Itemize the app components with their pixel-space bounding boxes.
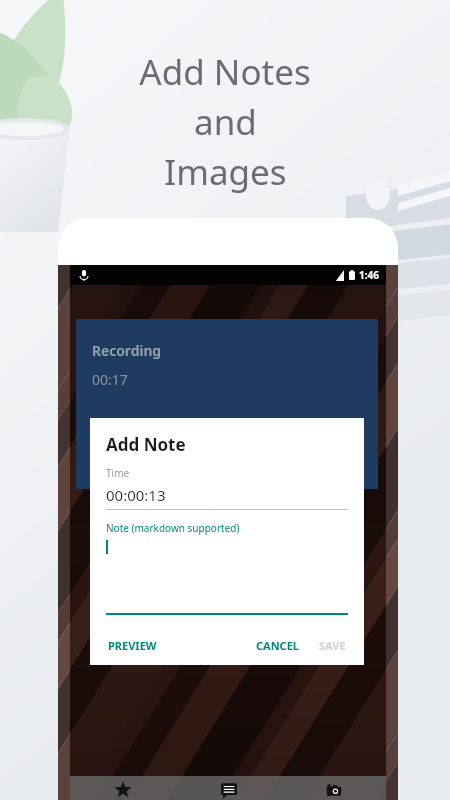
staticText: Note (markdown supported) [106, 521, 240, 535]
staticText: CANCEL [256, 638, 299, 653]
button[interactable]: SAVE [317, 636, 348, 655]
other: Add Note [220, 781, 238, 799]
staticText: 1:46 [359, 268, 379, 282]
staticText: Add Note [106, 433, 186, 456]
button[interactable]: Highlight [70, 776, 176, 800]
staticText: SAVE [319, 638, 346, 653]
staticText: Recording [92, 341, 162, 360]
staticText: Time [106, 466, 130, 480]
staticText: 00:17 [92, 370, 128, 389]
other: Add Image [325, 781, 343, 799]
staticText: Add Notes [139, 48, 311, 96]
staticText: Images [164, 148, 287, 196]
button[interactable]: Add Image [281, 776, 386, 800]
other: Highlight [114, 781, 132, 799]
staticText: and [194, 98, 257, 146]
staticText: 00:00:13 [106, 485, 166, 505]
button[interactable]: CANCEL [254, 636, 301, 655]
button[interactable]: PREVIEW [106, 636, 159, 655]
staticText: PREVIEW [108, 638, 157, 653]
button[interactable]: Add Note [176, 776, 281, 800]
button[interactable]: Recording [76, 319, 378, 489]
